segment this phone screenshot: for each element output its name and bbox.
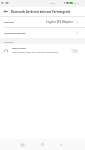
staticText: Verbindung beenden — [4, 32, 26, 35]
button[interactable]: Back — [54, 139, 67, 150]
staticText: 10:54 — [50, 2, 56, 5]
button[interactable]: Media-Audio — [0, 44, 85, 57]
staticText: Media-Audio — [12, 47, 26, 50]
staticText: Entfernen — [4, 21, 15, 24]
button[interactable]: Verbindung beenden — [0, 28, 85, 38]
staticText: Bluetooth-Gerät mit aktivem Partnergerät — [11, 10, 71, 14]
button[interactable]: Entfernen — [0, 17, 85, 27]
button[interactable]: Toggle Media Audio — [70, 49, 78, 53]
staticText: PROFILE — [4, 40, 14, 43]
button[interactable]: Recents — [16, 139, 29, 150]
staticText: Logitec MX Adapter — [46, 20, 74, 24]
button[interactable]: Home — [36, 139, 49, 150]
button[interactable]: Back — [1, 7, 10, 16]
staticText: 87 % — [74, 2, 79, 5]
staticText: Für Audiosystem von Medien verbunden — [12, 51, 59, 54]
